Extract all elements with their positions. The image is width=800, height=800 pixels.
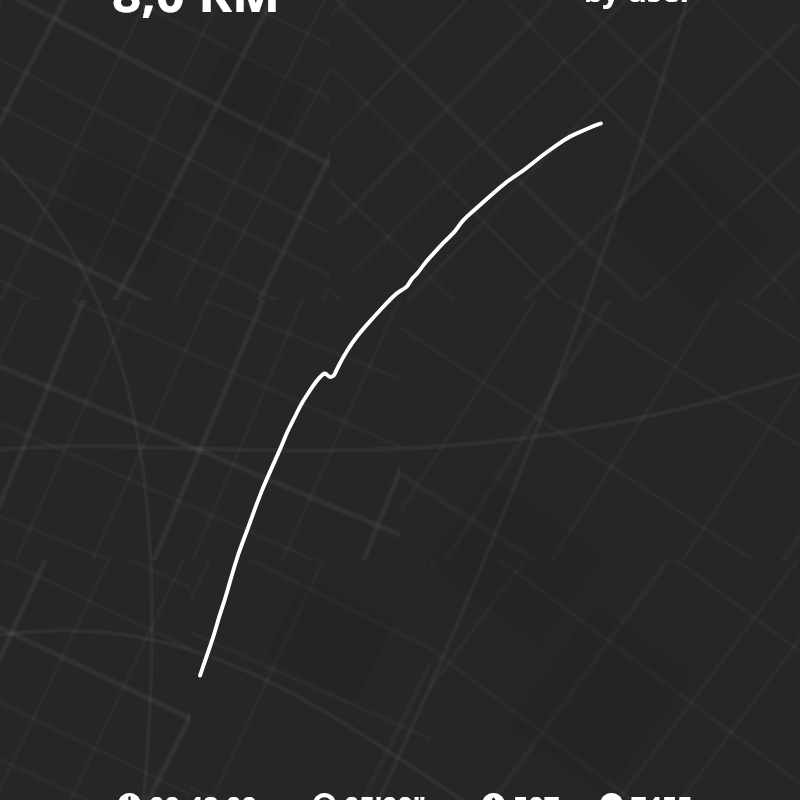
staticText: 7455 [631,787,693,800]
button[interactable]: Route map [0,0,800,800]
staticText: 05'00" [344,787,426,800]
staticText: 00:48:00 [149,787,257,800]
button[interactable]: Calories [482,793,560,800]
staticText: by user [584,0,694,11]
button[interactable]: Steps [600,793,693,800]
button[interactable]: Duration [118,793,257,800]
staticText: 8,0 KM [112,0,281,26]
staticText: 507 [513,787,560,800]
button[interactable]: Average pace [313,793,426,800]
